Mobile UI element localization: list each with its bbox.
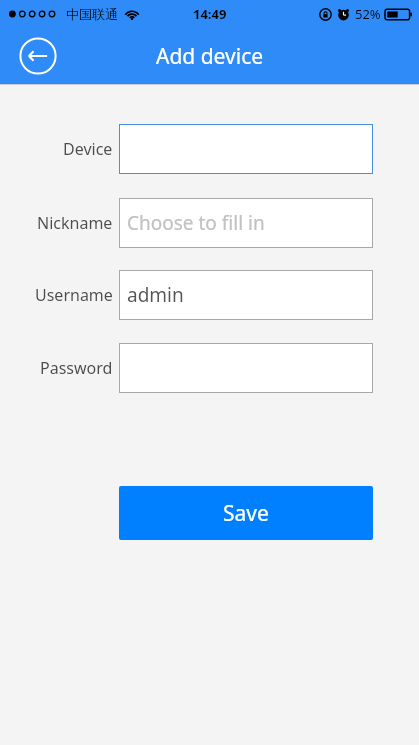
- staticText: 52%: [355, 5, 381, 23]
- staticText: Password: [40, 357, 113, 379]
- staticText: 中国联通: [66, 6, 118, 22]
- staticText: 14:49: [193, 5, 227, 23]
- staticText: Nickname: [37, 212, 113, 234]
- button[interactable]: [119, 124, 373, 174]
- staticText: admin: [127, 282, 184, 308]
- button[interactable]: Choose to fill in: [119, 198, 373, 248]
- staticText: Username: [35, 284, 113, 306]
- staticText: Save: [223, 499, 269, 528]
- staticText: Add device: [156, 42, 264, 71]
- staticText: Device: [63, 138, 113, 160]
- button[interactable]: Save: [119, 486, 373, 540]
- staticText: Choose to fill in: [127, 210, 265, 236]
- button[interactable]: Back: [16, 34, 60, 78]
- button[interactable]: [119, 343, 373, 393]
- button[interactable]: admin: [119, 270, 373, 320]
